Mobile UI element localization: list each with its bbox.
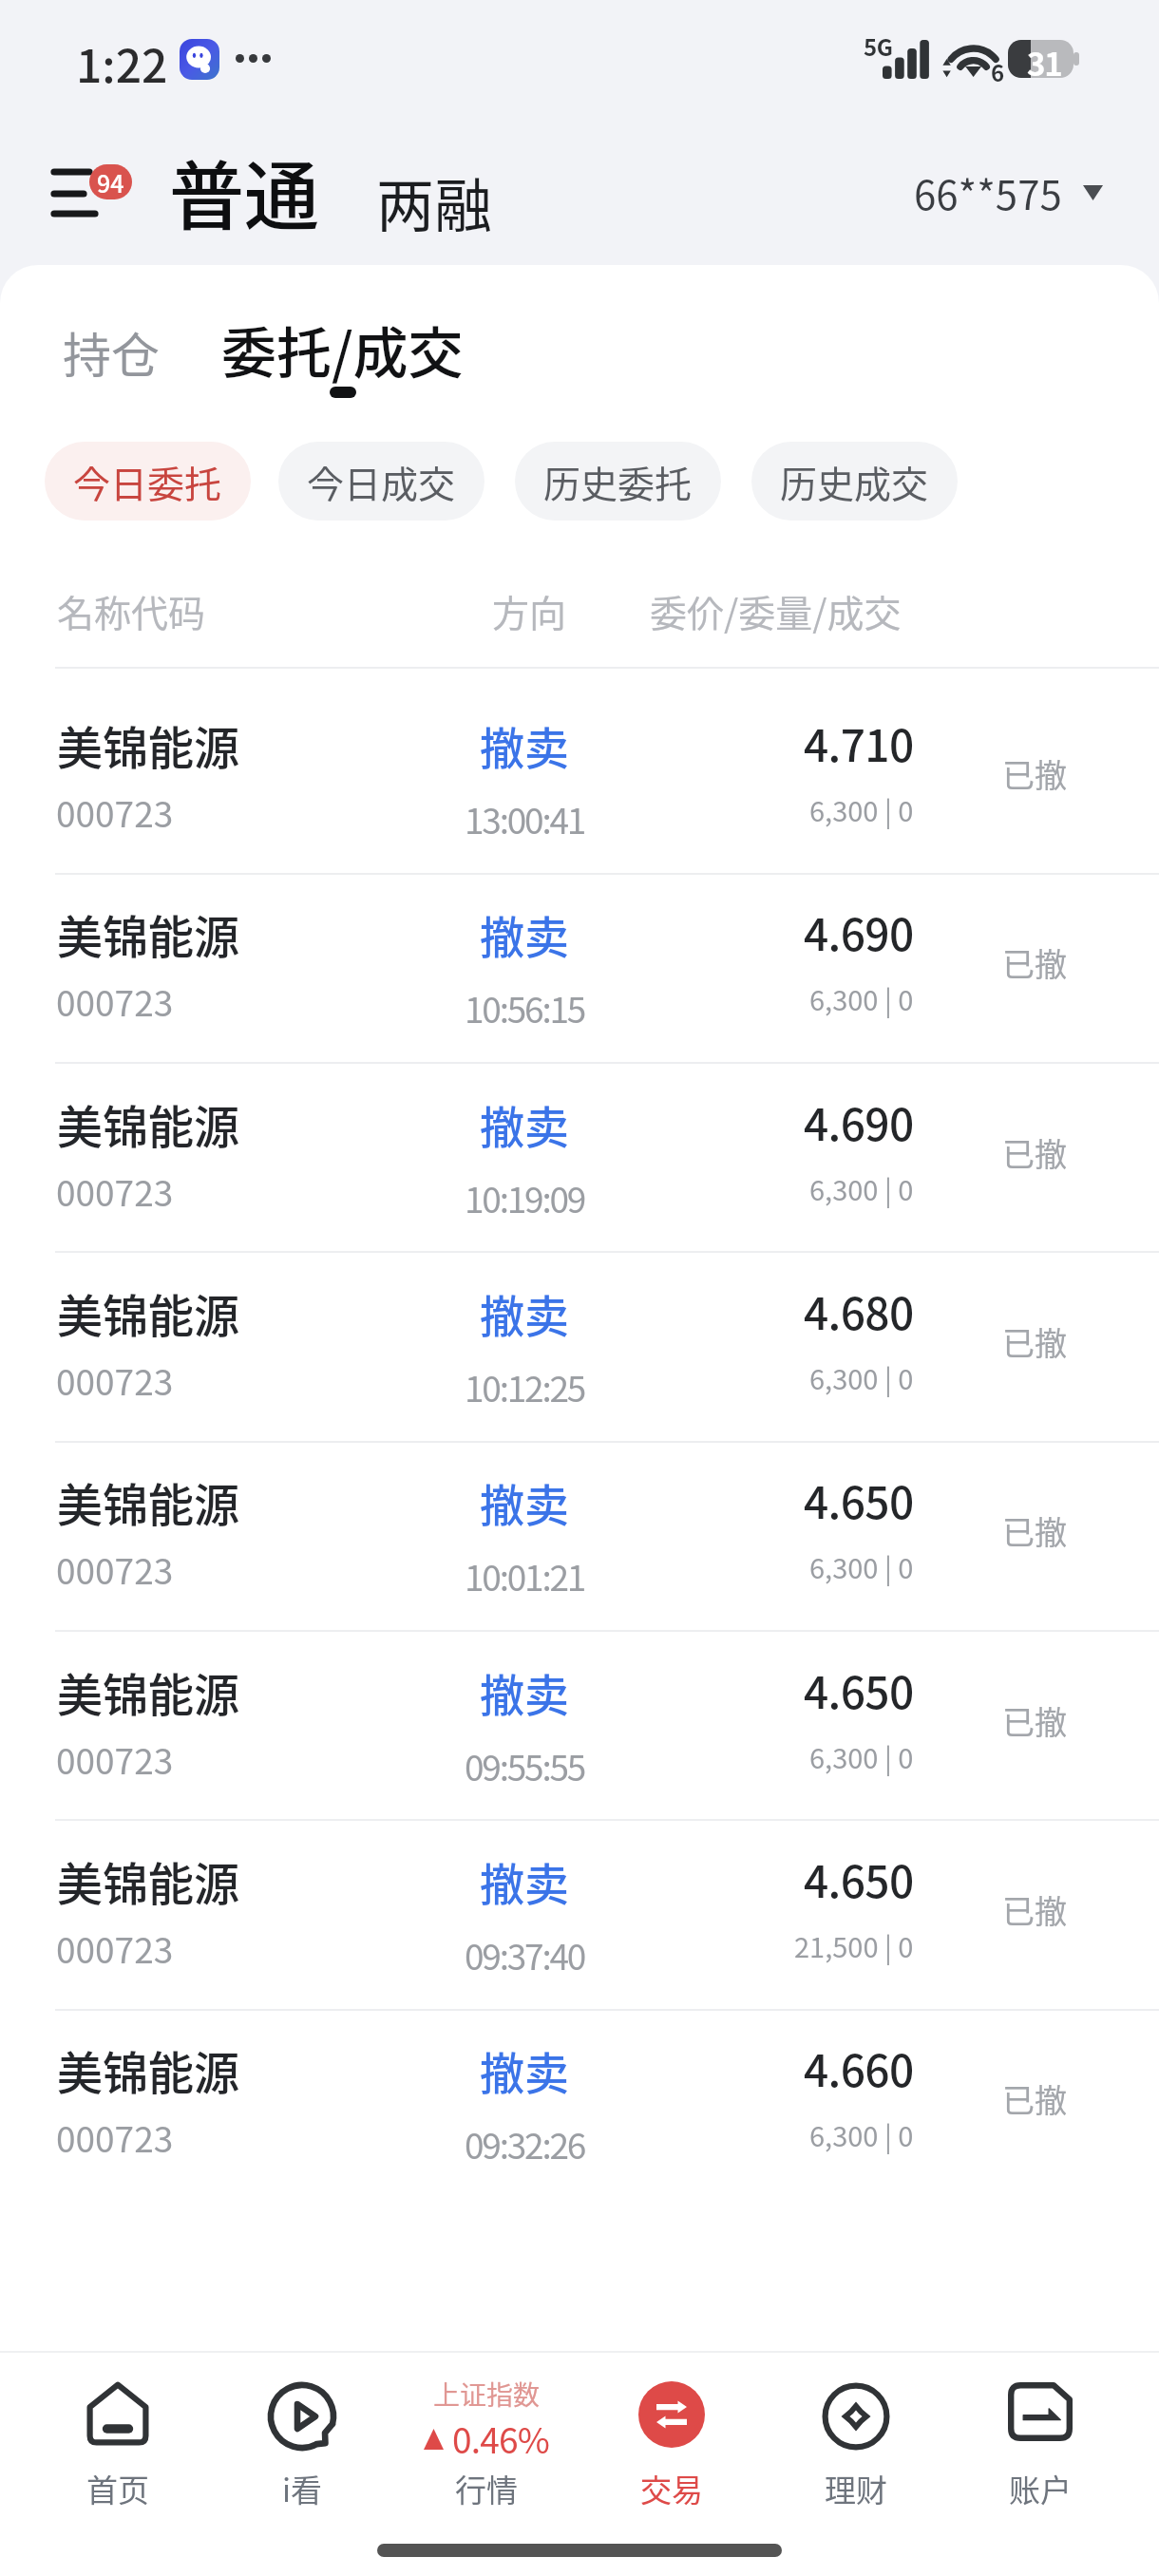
staticText: 美锦能源 — [57, 1658, 240, 1725]
staticText: 10:01:21 — [465, 1550, 585, 1601]
button[interactable]: 首页 — [32, 2361, 203, 2513]
staticText: 4.650 — [804, 1658, 914, 1722]
staticText: 委价/委量/成交 — [650, 584, 902, 637]
staticText: 000723 — [56, 1923, 174, 1974]
button[interactable]: 66**575 — [914, 163, 1103, 221]
staticText: 000723 — [56, 2112, 174, 2163]
button[interactable] — [0, 667, 1159, 872]
staticText: 4.690 — [804, 1090, 914, 1154]
staticText: i看 — [282, 2466, 323, 2511]
staticText: 已撤 — [1002, 1507, 1067, 1554]
staticText: 美锦能源 — [57, 2036, 240, 2103]
button[interactable]: Menu — [44, 152, 139, 234]
staticText: 6 — [991, 55, 1005, 88]
staticText: 6,300 | 0 — [809, 1168, 914, 1208]
staticText: 名称代码 — [57, 584, 206, 637]
staticText: 历史委托 — [543, 455, 693, 508]
staticText: 10:19:09 — [465, 1172, 585, 1223]
button[interactable] — [0, 1819, 1159, 2008]
button[interactable]: 交易 — [586, 2361, 757, 2513]
staticText: 6,300 | 0 — [809, 1736, 914, 1776]
staticText: 首页 — [86, 2466, 149, 2511]
button[interactable]: 历史成交 — [751, 442, 958, 521]
button[interactable]: 历史委托 — [515, 442, 721, 521]
staticText: 今日委托 — [73, 455, 222, 508]
staticText: 方向 — [492, 584, 567, 637]
staticText: 000723 — [56, 1544, 174, 1595]
staticText: 美锦能源 — [57, 1090, 240, 1157]
button[interactable]: 委托/成交 — [221, 310, 464, 389]
staticText: 66**575 — [914, 163, 1062, 221]
button[interactable] — [0, 2009, 1159, 2198]
staticText: 撤卖 — [480, 1091, 569, 1156]
staticText: 1:22 — [76, 29, 168, 96]
staticText: 4.710 — [804, 711, 914, 775]
staticText: 已撤 — [1002, 1697, 1067, 1744]
staticText: 000723 — [56, 1354, 174, 1406]
staticText: 撤卖 — [480, 1848, 569, 1913]
staticText: 09:55:55 — [465, 1740, 585, 1791]
staticText: 撤卖 — [480, 901, 569, 966]
staticText: 000723 — [56, 786, 174, 838]
staticText: 已撤 — [1002, 1318, 1067, 1365]
staticText: 美锦能源 — [57, 900, 240, 967]
button[interactable] — [0, 1062, 1159, 1251]
staticText: 5G — [864, 29, 893, 63]
staticText: 6,300 | 0 — [809, 978, 914, 1018]
staticText: 撤卖 — [480, 1469, 569, 1534]
staticText: 4.660 — [804, 2036, 914, 2100]
button[interactable]: 理财 — [770, 2361, 941, 2513]
staticText: 交易 — [640, 2466, 703, 2511]
button[interactable]: 上证指数 — [401, 2361, 572, 2513]
button[interactable]: 持仓 — [63, 317, 161, 388]
staticText: 行情 — [455, 2466, 518, 2511]
staticText: 21,500 | 0 — [794, 1925, 914, 1965]
staticText: 已撤 — [1002, 939, 1067, 986]
staticText: 已撤 — [1002, 1129, 1067, 1176]
staticText: 09:32:26 — [465, 2118, 585, 2169]
staticText: 已撤 — [1002, 1886, 1067, 1933]
staticText: 6,300 | 0 — [809, 789, 914, 829]
staticText: 今日成交 — [307, 455, 456, 508]
staticText: 31 — [1027, 40, 1062, 78]
staticText: 撤卖 — [480, 1280, 569, 1345]
staticText: 0.46% — [452, 2413, 549, 2464]
button[interactable]: i看 — [217, 2361, 388, 2513]
staticText: 美锦能源 — [57, 1468, 240, 1535]
button[interactable] — [0, 1251, 1159, 1440]
staticText: 理财 — [825, 2466, 887, 2511]
staticText: 撤卖 — [480, 1659, 569, 1724]
staticText: 4.650 — [804, 1847, 914, 1911]
button[interactable]: 两融 — [376, 160, 493, 243]
staticText: 美锦能源 — [57, 1847, 240, 1914]
staticText: 美锦能源 — [57, 1279, 240, 1346]
staticText: 13:00:41 — [465, 793, 585, 844]
button[interactable]: 今日委托 — [45, 442, 251, 521]
staticText: 10:12:25 — [465, 1361, 585, 1412]
staticText: 已撤 — [1002, 750, 1067, 797]
staticText: 已撤 — [1002, 2075, 1067, 2122]
staticText: 09:37:40 — [465, 1929, 585, 1980]
staticText: 上证指数 — [433, 2375, 541, 2414]
button[interactable] — [0, 873, 1159, 1062]
staticText: 10:56:15 — [465, 982, 585, 1033]
staticText: 撤卖 — [480, 712, 569, 777]
staticText: 撤卖 — [480, 2037, 569, 2102]
button[interactable] — [0, 1630, 1159, 1819]
button[interactable]: 账户 — [955, 2361, 1126, 2513]
staticText: 委托/成交 — [221, 310, 464, 389]
staticText: 000723 — [56, 1733, 174, 1785]
staticText: 4.680 — [804, 1279, 914, 1343]
staticText: 美锦能源 — [57, 711, 240, 778]
staticText: 000723 — [56, 1165, 174, 1217]
staticText: 历史成交 — [780, 455, 929, 508]
button[interactable]: 普通 — [169, 137, 319, 245]
staticText: 6,300 | 0 — [809, 1357, 914, 1397]
staticText: 账户 — [1009, 2466, 1072, 2511]
staticText: 4.650 — [804, 1468, 914, 1532]
staticText: 4.690 — [804, 900, 914, 964]
staticText: 6,300 | 0 — [809, 1546, 914, 1586]
button[interactable] — [0, 1441, 1159, 1630]
button[interactable]: 今日成交 — [278, 442, 484, 521]
staticText: 6,300 | 0 — [809, 2114, 914, 2154]
